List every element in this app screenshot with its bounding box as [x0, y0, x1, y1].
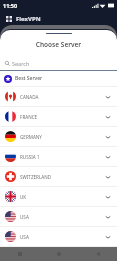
button[interactable]: Menu — [4, 14, 14, 24]
staticText: Best Server Selected — [39, 24, 78, 29]
button[interactable]: RUSSIA 1 — [5, 147, 111, 166]
button[interactable]: GERMANY — [5, 127, 111, 146]
button[interactable]: USA — [5, 227, 111, 246]
staticText: Search — [12, 60, 30, 67]
staticText: CANADA — [20, 94, 39, 100]
button[interactable]: Search — [5, 57, 117, 70]
staticText: FlexVPN — [16, 15, 41, 23]
staticText: USA — [20, 234, 29, 240]
button[interactable]: FRANCE — [5, 107, 111, 126]
staticText: GERMANY — [20, 134, 42, 140]
button[interactable]: USA — [5, 207, 111, 226]
staticText: SWITZERLAND — [20, 174, 52, 180]
button[interactable]: UK — [5, 187, 111, 206]
staticText: USA — [20, 214, 29, 220]
staticText: Best Server — [15, 75, 43, 82]
staticText: UK — [20, 194, 27, 200]
staticText: 11:50 — [3, 2, 18, 9]
button[interactable]: SWITZERLAND — [5, 167, 111, 186]
staticText: FRANCE — [20, 114, 38, 120]
button[interactable]: CANADA — [5, 87, 111, 106]
staticText: Choose Server — [0, 40, 117, 49]
other: Search — [5, 61, 10, 66]
staticText: RUSSIA 1 — [20, 154, 40, 160]
button[interactable]: Best Server — [4, 71, 117, 86]
